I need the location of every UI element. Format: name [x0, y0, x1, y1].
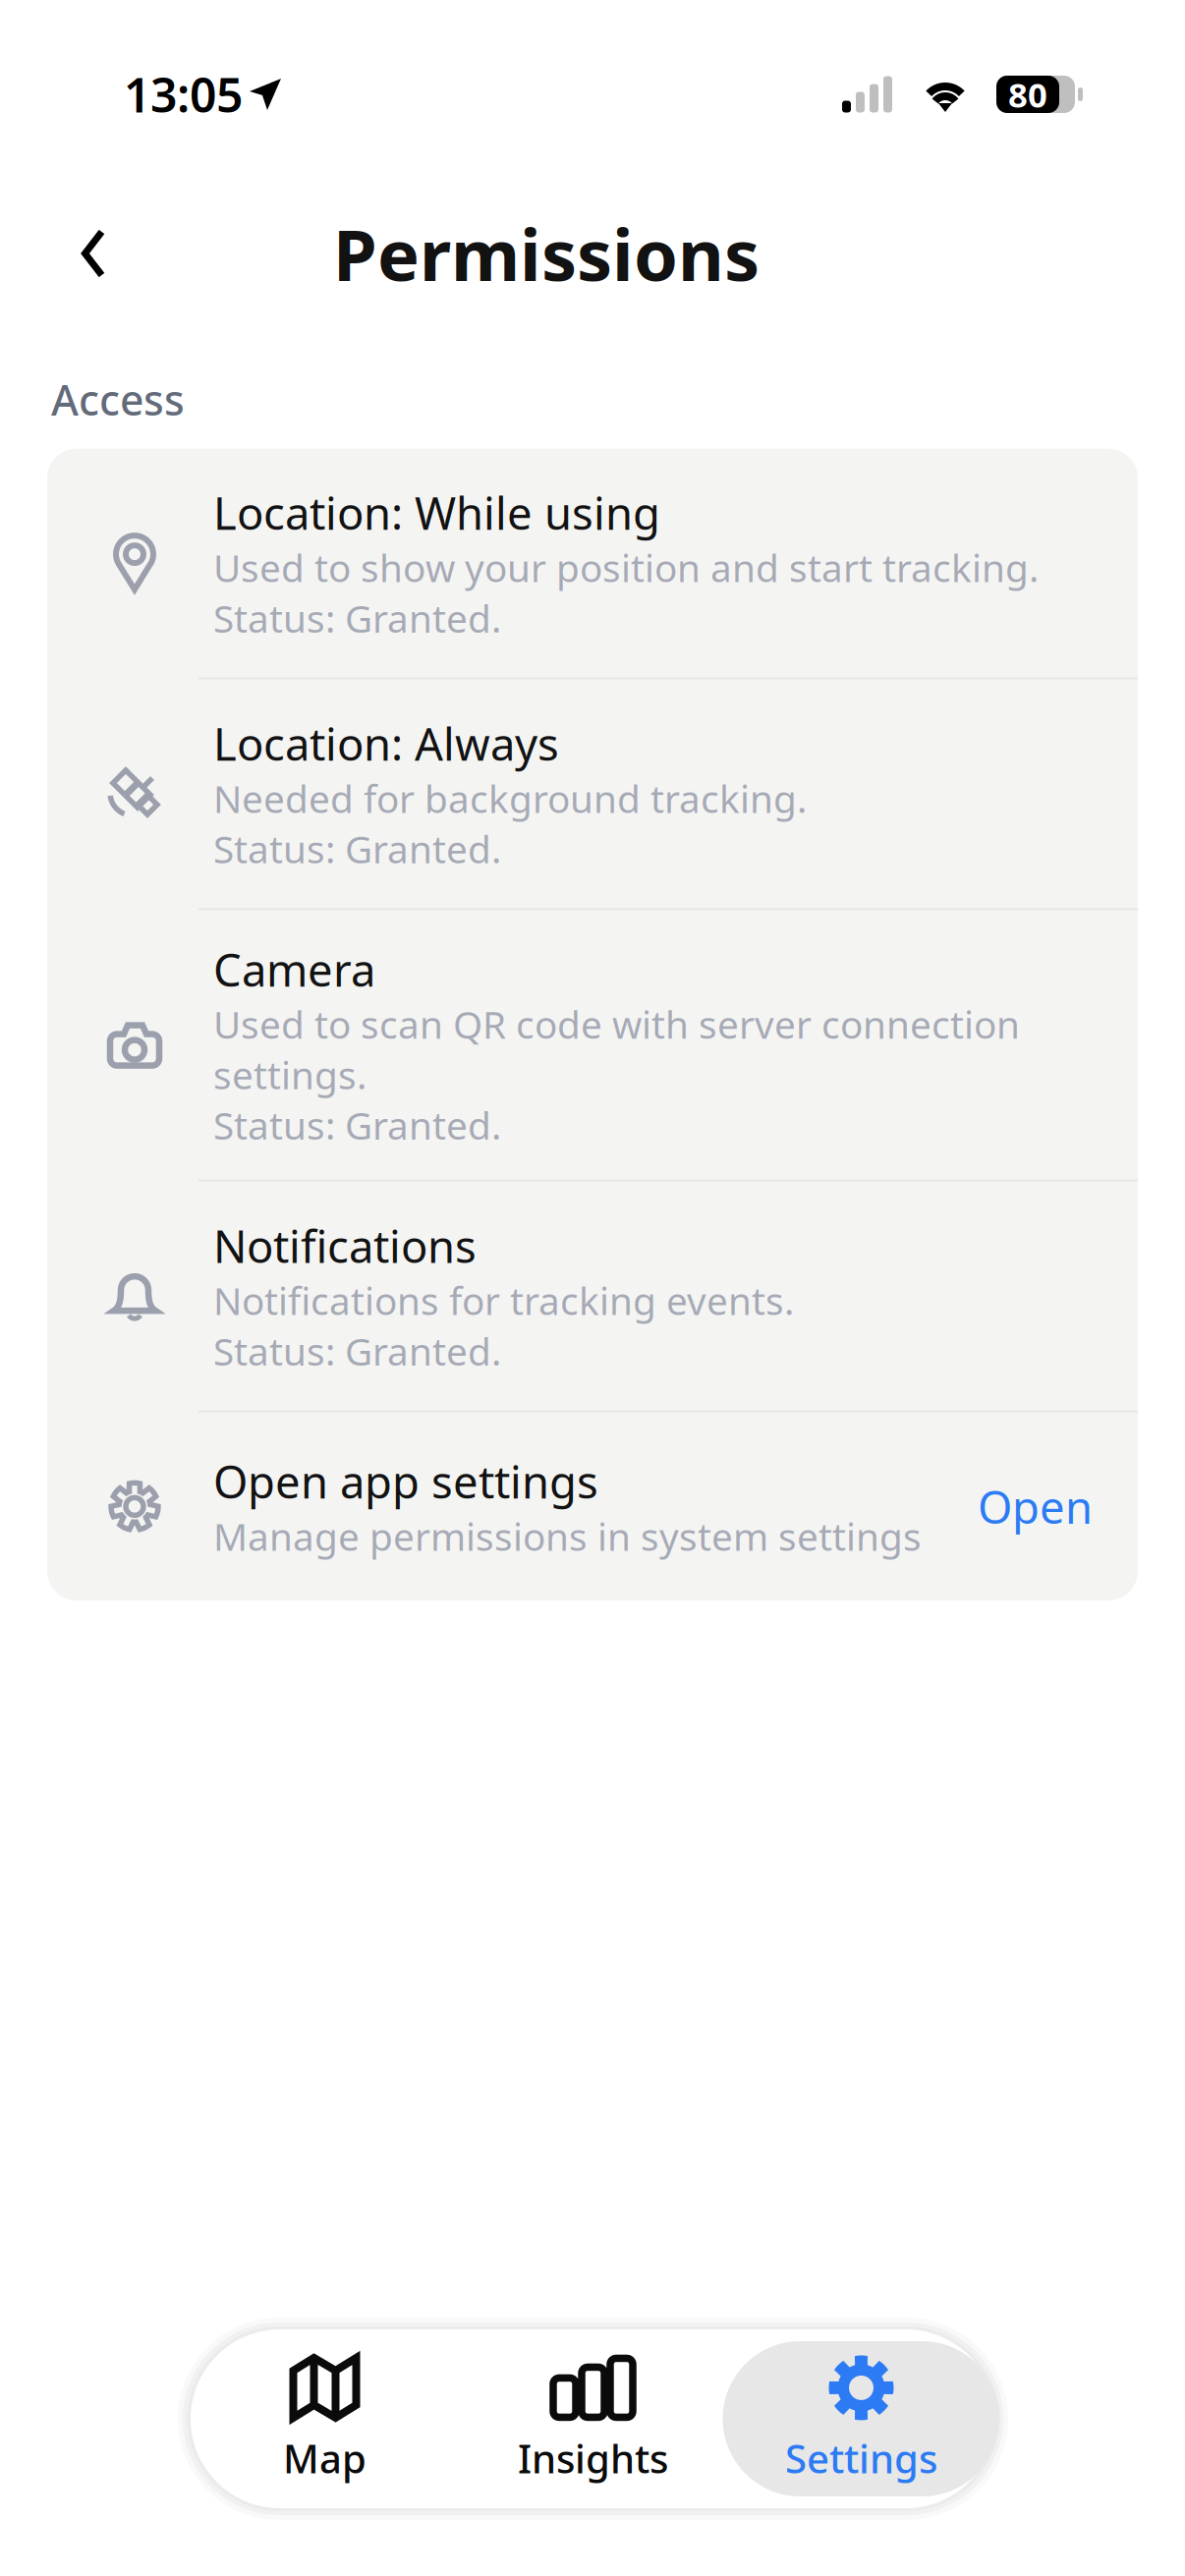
staticText: Manage permissions in system settings	[213, 1511, 922, 1561]
button[interactable]: Notifications	[47, 1182, 1138, 1410]
button[interactable]: Camera	[47, 910, 1138, 1180]
staticText: Used to scan QR code with server connect…	[213, 999, 1020, 1049]
button[interactable]: Open	[952, 1463, 1138, 1550]
staticText: settings.	[213, 1049, 367, 1100]
staticText: Access	[51, 371, 185, 427]
staticText: 80	[1008, 72, 1047, 117]
button[interactable]: Location: Always	[47, 679, 1138, 908]
staticText: 13:05	[124, 63, 243, 126]
staticText: Status: Granted.	[213, 1100, 501, 1150]
button[interactable]: Settings	[727, 2329, 995, 2508]
staticText: Open app settings	[213, 1452, 598, 1511]
button[interactable]: Insights	[459, 2329, 727, 2508]
staticText: Camera	[213, 940, 375, 999]
button[interactable]: Open app settings	[47, 1412, 1138, 1601]
staticText: Used to show your position and start tra…	[213, 542, 1039, 593]
staticText: Status: Granted.	[213, 593, 501, 643]
staticText: Map	[283, 2432, 367, 2484]
staticText: Notifications for tracking events.	[213, 1275, 794, 1326]
button[interactable]: Map	[191, 2329, 459, 2508]
button[interactable]: Location: While using	[47, 449, 1138, 678]
staticText: Open	[978, 1477, 1093, 1536]
staticText: Needed for background tracking.	[213, 773, 807, 823]
staticText: Insights	[518, 2432, 668, 2484]
staticText: Settings	[785, 2432, 937, 2484]
staticText: Permissions	[333, 207, 760, 300]
staticText: Status: Granted.	[213, 823, 501, 874]
staticText: Status: Granted.	[213, 1326, 501, 1376]
button[interactable]: Back	[57, 211, 130, 296]
staticText: Notifications	[213, 1216, 477, 1275]
staticText: Location: Always	[213, 714, 559, 773]
staticText: Location: While using	[213, 483, 660, 542]
